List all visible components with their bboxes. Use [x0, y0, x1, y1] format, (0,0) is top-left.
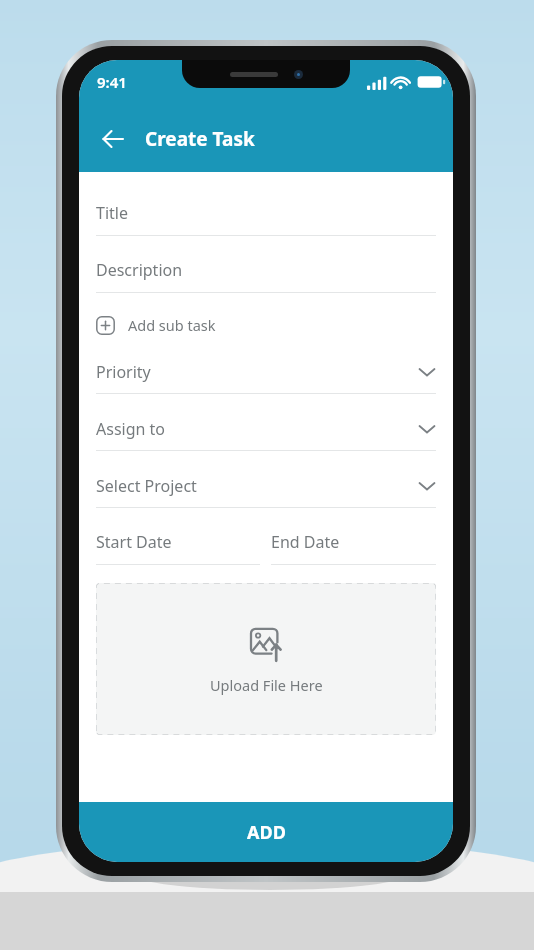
staticText: Description [96, 259, 183, 281]
staticText: Priority [96, 361, 418, 383]
button[interactable]: Description [96, 259, 436, 293]
staticText: Create Task [145, 126, 255, 152]
button[interactable]: Title [96, 202, 436, 236]
button[interactable]: ADD [79, 802, 453, 862]
button[interactable]: Select Project [96, 475, 436, 508]
staticText: Upload File Here [210, 675, 323, 695]
staticText: Title [96, 202, 128, 224]
staticText: 9:41 [97, 72, 127, 92]
staticText: Add sub task [128, 315, 216, 335]
button[interactable]: Upload File Here [96, 583, 436, 735]
button[interactable]: End Date [271, 531, 436, 565]
staticText: End Date [271, 531, 340, 553]
button[interactable]: Assign to [96, 418, 436, 451]
button[interactable]: Back [91, 117, 135, 161]
button[interactable]: Start Date [96, 531, 260, 565]
button[interactable]: Priority [96, 361, 436, 394]
staticText: ADD [247, 820, 286, 845]
staticText: Select Project [96, 475, 418, 497]
staticText: Assign to [96, 418, 418, 440]
staticText: Start Date [96, 531, 172, 553]
button[interactable]: Add sub task [96, 305, 436, 345]
